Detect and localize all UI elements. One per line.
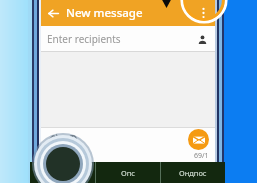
staticText: Ондпос <box>179 168 207 178</box>
button[interactable]: Ондпос <box>161 162 225 183</box>
staticText: New message <box>66 5 143 21</box>
button[interactable]: Back <box>44 4 62 22</box>
button[interactable]: Опс <box>96 162 160 183</box>
button[interactable]: More options <box>193 3 213 23</box>
staticText: 69/1 <box>194 151 209 161</box>
button[interactable]: Add contact <box>195 32 209 46</box>
staticText: Enter recipients <box>47 32 121 46</box>
button[interactable]: Enter recipients <box>41 26 215 51</box>
button[interactable]: Insert emoticon <box>63 130 81 148</box>
button[interactable]: Send message <box>188 129 209 150</box>
button[interactable]: Attach <box>45 130 63 148</box>
staticText: Опс <box>121 168 135 178</box>
